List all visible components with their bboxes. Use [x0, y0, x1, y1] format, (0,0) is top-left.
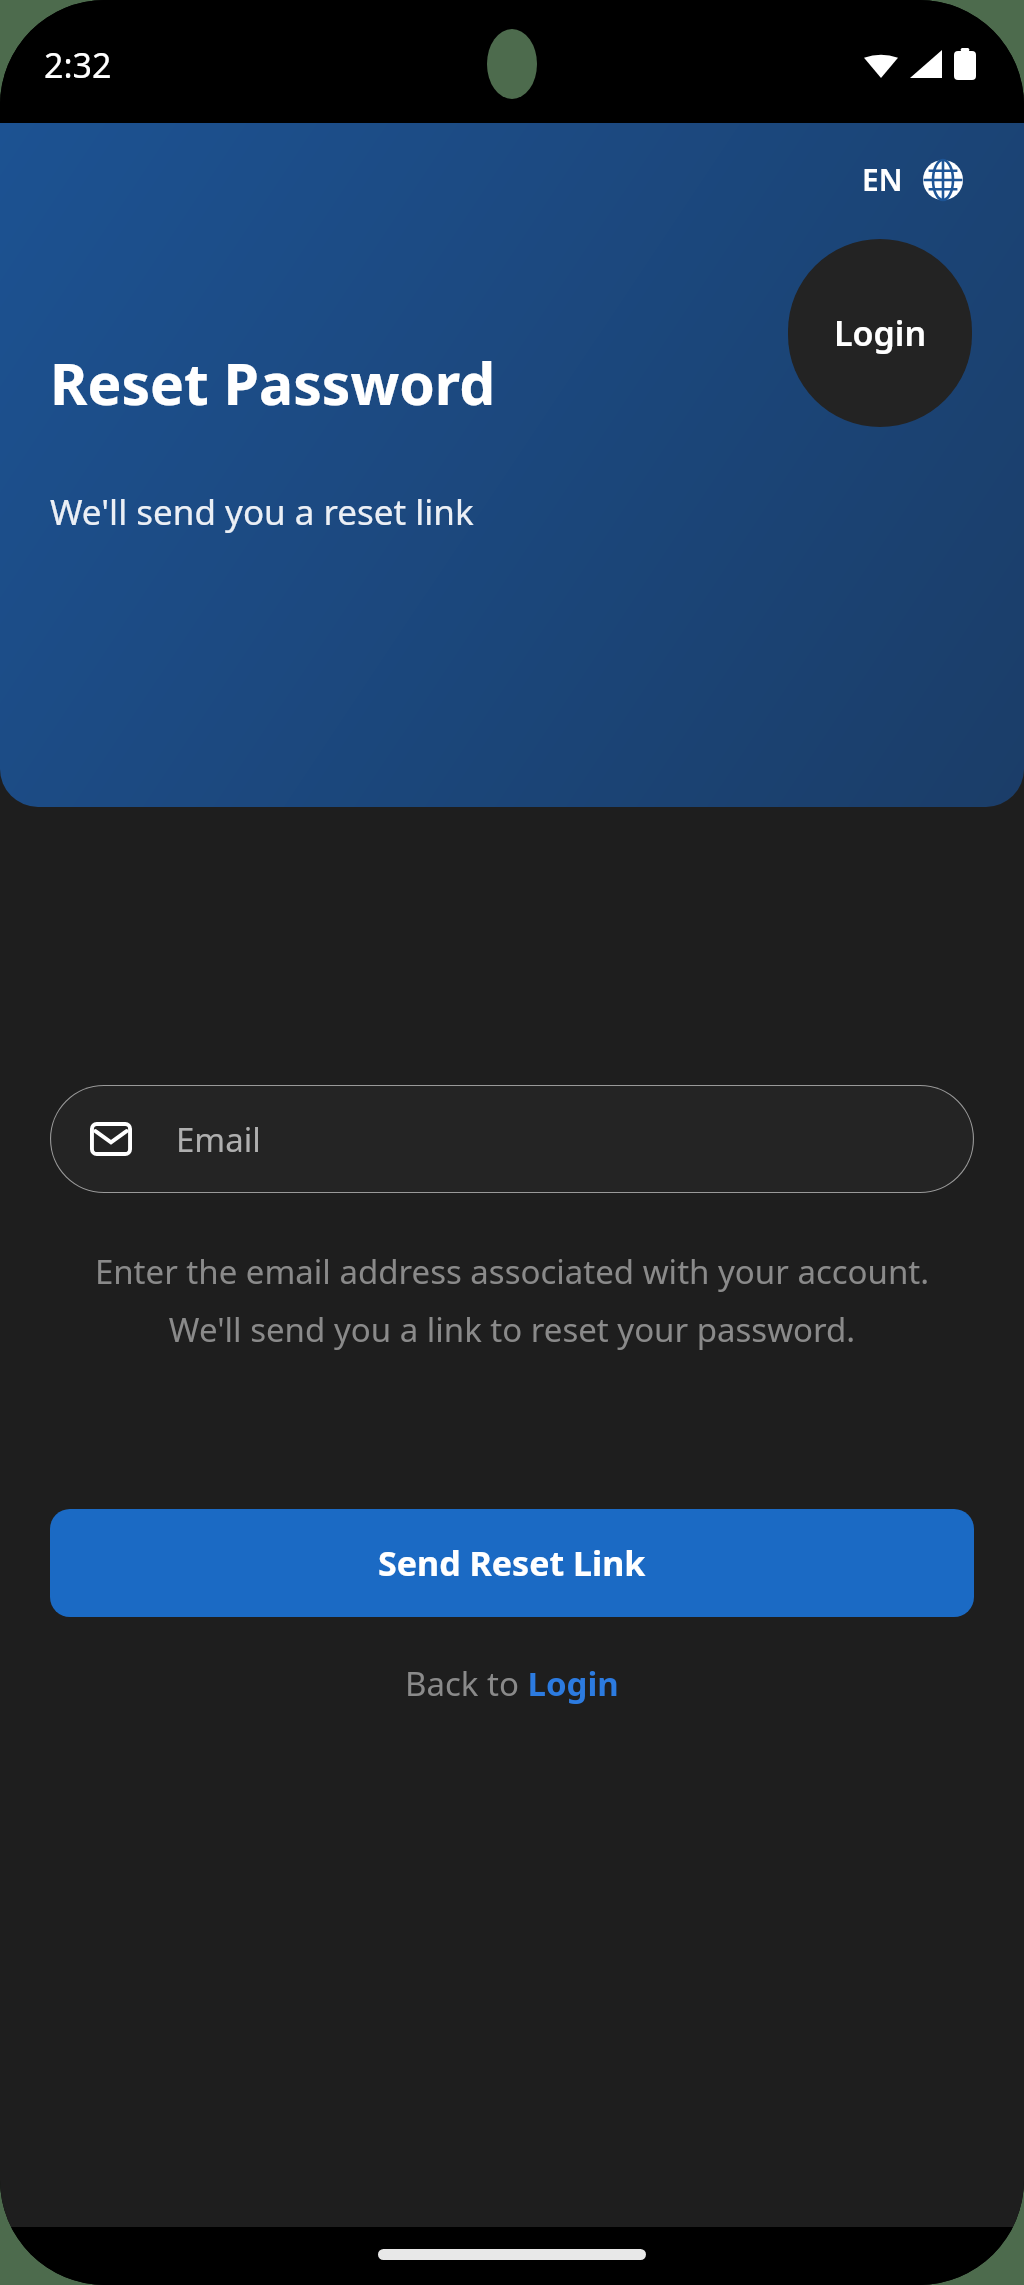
button[interactable]: EN: [856, 153, 969, 206]
button[interactable]: Send Reset Link: [50, 1509, 974, 1617]
staticText: Reset Password: [50, 344, 496, 422]
staticText: Enter the email address associated with …: [80, 1249, 944, 1351]
staticText: EN: [862, 159, 903, 200]
staticText: We'll send you a reset link: [50, 488, 474, 536]
button[interactable]: Email: [50, 1085, 974, 1193]
other: Change language: [923, 160, 963, 200]
staticText: Login: [834, 310, 927, 356]
staticText: Back to Login: [405, 1661, 619, 1706]
staticText: 2:32: [44, 42, 112, 88]
staticText: Send Reset Link: [378, 1540, 646, 1586]
button[interactable]: Login: [788, 239, 972, 427]
button[interactable]: Back to Login: [389, 1651, 635, 1716]
staticText: Email: [176, 1117, 261, 1162]
